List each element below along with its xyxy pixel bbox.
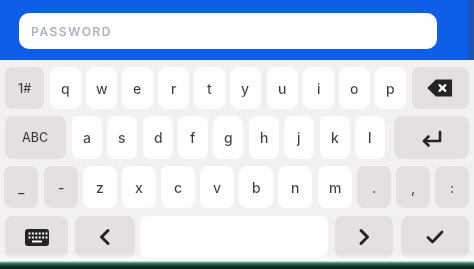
staticText: r bbox=[171, 80, 177, 97]
staticText: k bbox=[331, 129, 339, 146]
staticText: x bbox=[135, 179, 143, 196]
staticText: c bbox=[174, 179, 183, 196]
button[interactable] bbox=[75, 216, 135, 258]
button[interactable]: t bbox=[194, 67, 225, 109]
button[interactable]: y bbox=[230, 67, 261, 109]
button[interactable]: p bbox=[375, 67, 406, 109]
staticText: h bbox=[260, 129, 269, 146]
staticText: y bbox=[241, 80, 250, 97]
button[interactable]: o bbox=[339, 67, 370, 109]
button[interactable]: f bbox=[178, 116, 208, 159]
staticText: _ bbox=[18, 179, 25, 196]
button[interactable]: q bbox=[50, 67, 81, 109]
staticText: i bbox=[317, 80, 321, 97]
staticText: w bbox=[96, 80, 108, 97]
staticText: n bbox=[291, 179, 300, 196]
button[interactable]: j bbox=[284, 116, 314, 159]
staticText: - bbox=[58, 179, 65, 196]
staticText: q bbox=[61, 80, 70, 97]
staticText: f bbox=[190, 129, 196, 146]
button[interactable]: d bbox=[143, 116, 173, 159]
staticText: a bbox=[83, 129, 91, 146]
button[interactable]: i bbox=[303, 67, 334, 109]
staticText: s bbox=[118, 129, 126, 146]
button[interactable]: z bbox=[83, 166, 117, 208]
button[interactable] bbox=[412, 67, 469, 109]
staticText: : bbox=[450, 179, 455, 196]
button[interactable]: , bbox=[396, 166, 430, 208]
button[interactable]: n bbox=[278, 166, 312, 208]
button[interactable]: k bbox=[320, 116, 350, 159]
button[interactable]: e bbox=[122, 67, 153, 109]
staticText: . bbox=[372, 179, 377, 196]
staticText: 1# bbox=[18, 81, 32, 96]
button[interactable]: v bbox=[200, 166, 234, 208]
staticText: e bbox=[133, 80, 142, 97]
button[interactable]: u bbox=[267, 67, 298, 109]
button[interactable]: PASSWORD bbox=[19, 13, 437, 49]
staticText: t bbox=[207, 80, 212, 97]
staticText: b bbox=[252, 179, 261, 196]
button[interactable]: m bbox=[318, 166, 352, 208]
staticText: u bbox=[278, 80, 287, 97]
button[interactable] bbox=[394, 116, 469, 159]
button[interactable]: ABC bbox=[5, 116, 66, 159]
staticText: , bbox=[411, 179, 416, 196]
button[interactable]: r bbox=[158, 67, 189, 109]
staticText: d bbox=[154, 129, 163, 146]
button[interactable]: a bbox=[72, 116, 102, 159]
button[interactable] bbox=[401, 216, 469, 258]
button[interactable]: 1# bbox=[5, 67, 44, 109]
button[interactable] bbox=[5, 216, 68, 258]
button[interactable]: w bbox=[86, 67, 117, 109]
button[interactable]: - bbox=[44, 166, 78, 208]
staticText: p bbox=[386, 80, 395, 97]
staticText: o bbox=[350, 80, 359, 97]
button[interactable] bbox=[335, 216, 393, 258]
button[interactable]: : bbox=[435, 166, 469, 208]
staticText: PASSWORD bbox=[31, 24, 113, 39]
staticText: l bbox=[368, 129, 372, 146]
staticText: j bbox=[297, 129, 301, 146]
staticText: m bbox=[329, 179, 342, 196]
button[interactable]: c bbox=[161, 166, 195, 208]
button[interactable]: g bbox=[213, 116, 243, 159]
button[interactable]: h bbox=[249, 116, 279, 159]
staticText: z bbox=[96, 179, 104, 196]
button[interactable]: b bbox=[239, 166, 273, 208]
button[interactable]: . bbox=[357, 166, 391, 208]
button[interactable]: l bbox=[355, 116, 385, 159]
staticText: g bbox=[224, 129, 233, 146]
staticText: v bbox=[213, 179, 222, 196]
button[interactable]: x bbox=[122, 166, 156, 208]
staticText: ABC bbox=[22, 130, 49, 145]
button[interactable]: s bbox=[107, 116, 137, 159]
button[interactable]: _ bbox=[4, 166, 38, 208]
